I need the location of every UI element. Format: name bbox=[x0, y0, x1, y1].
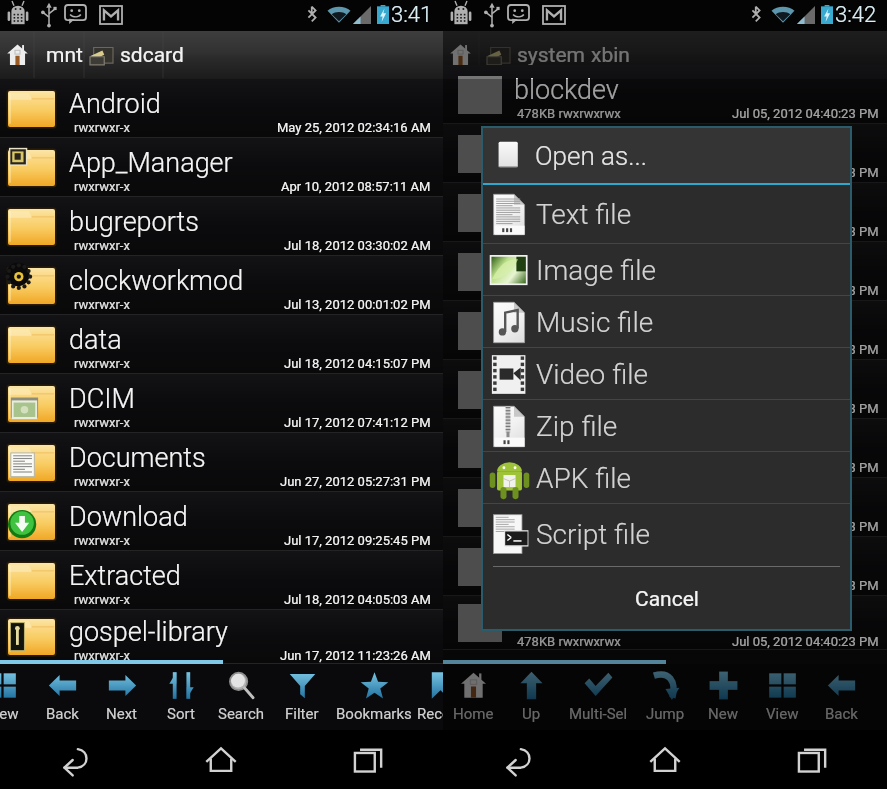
staticText: Jul 05, 2012 04:40:23 PM bbox=[732, 634, 879, 649]
staticText: App_Manager bbox=[69, 147, 233, 179]
button[interactable]: Up bbox=[501, 664, 561, 730]
staticText: 478KB rwxrwxrwx bbox=[517, 401, 621, 416]
staticText: Multi-Sel bbox=[569, 705, 628, 723]
button[interactable]: mnt bbox=[46, 31, 86, 79]
staticText: Jul 05, 2012 04:40:23 PM bbox=[732, 283, 879, 298]
button[interactable]: sdcard bbox=[90, 31, 190, 79]
button[interactable]: Search bbox=[211, 664, 271, 730]
staticText: Music file bbox=[536, 306, 654, 339]
staticText: Sort bbox=[167, 705, 195, 723]
staticText: Cancel bbox=[635, 587, 699, 612]
button[interactable]: App_Manager bbox=[0, 138, 443, 197]
staticText: Jul 18, 2012 04:05:03 AM bbox=[284, 592, 431, 607]
button[interactable]: New bbox=[693, 664, 753, 730]
staticText: Jul 05, 2012 04:40:23 PM bbox=[732, 578, 879, 593]
staticText: Jul 05, 2012 04:40:23 PM bbox=[732, 342, 879, 357]
staticText: 3:41 bbox=[391, 2, 433, 28]
button[interactable]: Image file bbox=[481, 244, 852, 296]
button[interactable]: system bbox=[487, 31, 587, 79]
staticText: cut bbox=[514, 369, 552, 401]
staticText: 478KB rwxrwxrwx bbox=[517, 519, 621, 534]
button[interactable]: Back bbox=[32, 664, 92, 730]
staticText: 478KB rwxrwxrwx bbox=[517, 460, 621, 475]
button[interactable]: clockworkmod bbox=[0, 256, 443, 315]
button[interactable]: Back bbox=[811, 664, 871, 730]
staticText: Filter bbox=[285, 705, 319, 723]
button[interactable]: Recent bbox=[414, 664, 443, 730]
button[interactable]: xbin bbox=[591, 31, 641, 79]
button[interactable]: bugreports bbox=[0, 197, 443, 256]
button[interactable]: Music file bbox=[481, 296, 852, 348]
staticText: cut bbox=[514, 251, 552, 283]
staticText: cut bbox=[514, 602, 552, 634]
staticText: Extracted bbox=[69, 560, 181, 592]
button[interactable]: Open as... bbox=[481, 126, 852, 185]
staticText: Video file bbox=[536, 358, 648, 391]
button[interactable]: Home bbox=[443, 31, 477, 79]
staticText: xbin bbox=[591, 43, 630, 68]
staticText: cut bbox=[514, 487, 552, 519]
button[interactable]: Android bbox=[0, 79, 443, 138]
staticText: Jun 27, 2012 05:27:31 PM bbox=[280, 474, 431, 489]
button[interactable]: Recent apps bbox=[295, 730, 443, 789]
staticText: rwxrwxr-x bbox=[74, 356, 130, 371]
staticText: 478KB rwxrwxrwx bbox=[517, 283, 621, 298]
button[interactable]: Script file bbox=[481, 504, 852, 565]
staticText: Search bbox=[218, 705, 265, 723]
staticText: Zip file bbox=[536, 410, 618, 443]
button[interactable]: Home bbox=[147, 730, 295, 789]
button[interactable]: Documents bbox=[0, 433, 443, 492]
staticText: 478KB rwxrwxrwx bbox=[517, 106, 621, 121]
button[interactable]: Filter bbox=[272, 664, 332, 730]
button[interactable]: Text file bbox=[481, 185, 852, 244]
staticText: rwxrwxr-x bbox=[74, 474, 130, 489]
staticText: rwxrwxr-x bbox=[74, 648, 130, 663]
button[interactable]: Recent apps bbox=[739, 730, 887, 789]
staticText: Recent bbox=[417, 705, 443, 723]
button[interactable]: Cancel bbox=[481, 567, 852, 631]
button[interactable]: APK file bbox=[481, 452, 852, 504]
button[interactable]: Multi-Sel bbox=[565, 664, 631, 730]
staticText: APK file bbox=[536, 462, 632, 495]
button[interactable]: View bbox=[752, 664, 812, 730]
staticText: 478KB rwxrwxrwx bbox=[517, 342, 621, 357]
staticText: system bbox=[517, 43, 586, 68]
button[interactable]: DCIM bbox=[0, 374, 443, 433]
staticText: Jul 13, 2012 00:01:02 PM bbox=[284, 297, 431, 312]
button[interactable]: Home bbox=[0, 31, 34, 79]
staticText: gospel-library bbox=[69, 616, 228, 648]
staticText: rwxrwxr-x bbox=[74, 120, 130, 135]
button[interactable]: Extracted bbox=[0, 551, 443, 610]
staticText: cut bbox=[514, 133, 552, 165]
button[interactable]: Next bbox=[92, 664, 152, 730]
button[interactable]: Download bbox=[0, 492, 443, 551]
button[interactable]: Back bbox=[443, 730, 591, 789]
staticText: Home bbox=[453, 705, 494, 723]
staticText: New bbox=[708, 705, 738, 723]
staticText: DCIM bbox=[69, 383, 135, 415]
staticText: rwxrwxr-x bbox=[74, 297, 130, 312]
staticText: clockworkmod bbox=[69, 265, 244, 297]
button[interactable]: Video file bbox=[481, 348, 852, 400]
button[interactable]: Back bbox=[0, 730, 147, 789]
button[interactable]: Home bbox=[443, 664, 503, 730]
button[interactable]: Sort bbox=[151, 664, 211, 730]
button[interactable]: data bbox=[0, 315, 443, 374]
staticText: Open as... bbox=[535, 141, 647, 171]
staticText: blockdev bbox=[514, 74, 619, 106]
button[interactable]: View bbox=[0, 664, 28, 730]
staticText: cut bbox=[514, 546, 552, 578]
staticText: Download bbox=[69, 501, 188, 533]
button[interactable]: Home bbox=[591, 730, 739, 789]
staticText: Back bbox=[825, 705, 858, 723]
staticText: View bbox=[766, 705, 799, 723]
button[interactable]: Jump bbox=[635, 664, 695, 730]
button[interactable]: gospel-library bbox=[0, 610, 443, 664]
staticText: Up bbox=[522, 705, 541, 723]
staticText: cut bbox=[514, 310, 552, 342]
staticText: data bbox=[69, 324, 122, 356]
staticText: Jul 05, 2012 04:40:23 PM bbox=[732, 460, 879, 475]
staticText: Text file bbox=[536, 198, 632, 231]
button[interactable]: Bookmarks bbox=[334, 664, 414, 730]
button[interactable]: Zip file bbox=[481, 400, 852, 452]
